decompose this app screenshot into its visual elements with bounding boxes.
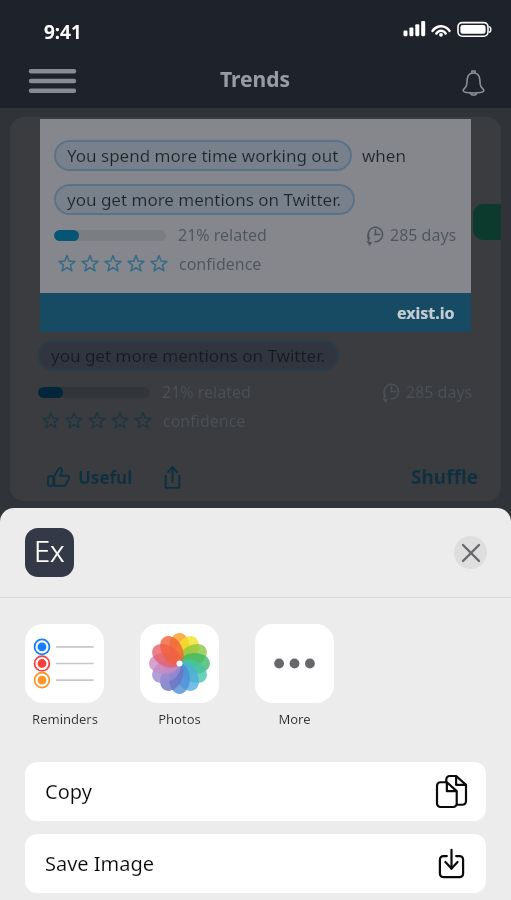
- staticText: More: [278, 710, 311, 728]
- staticText: when: [362, 144, 406, 167]
- staticText: Copy: [45, 778, 92, 805]
- staticText: Save Image: [45, 850, 155, 877]
- button[interactable]: Copy: [25, 762, 486, 821]
- button[interactable]: Ex: [25, 528, 74, 577]
- staticText: Ex: [34, 531, 65, 570]
- staticText: Useful: [78, 466, 133, 489]
- staticText: 21% related: [162, 381, 251, 403]
- staticText: Reminders: [32, 710, 98, 728]
- staticText: confidence: [163, 410, 246, 432]
- staticText: Trends: [220, 65, 291, 94]
- staticText: 285 days: [406, 381, 473, 403]
- button[interactable]: Close: [454, 536, 487, 569]
- staticText: You spend more time working out: [67, 144, 339, 167]
- button[interactable]: Menu: [31, 60, 86, 102]
- button[interactable]: Shuffle: [411, 460, 479, 494]
- staticText: 21% related: [178, 224, 267, 246]
- button[interactable]: Useful: [38, 461, 133, 494]
- staticText: 285 days: [390, 224, 457, 246]
- staticText: Photos: [158, 710, 201, 728]
- button[interactable]: Add: [473, 204, 501, 240]
- button[interactable]: Save Image: [25, 834, 486, 893]
- button[interactable]: Photos: [140, 624, 219, 728]
- staticText: exist.io: [397, 302, 455, 324]
- button[interactable]: Notifications: [449, 58, 497, 106]
- staticText: confidence: [179, 253, 262, 275]
- button[interactable]: Reminders: [25, 624, 104, 728]
- button[interactable]: Share: [157, 462, 187, 492]
- staticText: you get more mentions on Twitter.: [67, 188, 342, 211]
- staticText: 9:41: [44, 19, 82, 45]
- button[interactable]: More: [255, 624, 334, 728]
- staticText: you get more mentions on Twitter.: [51, 344, 326, 367]
